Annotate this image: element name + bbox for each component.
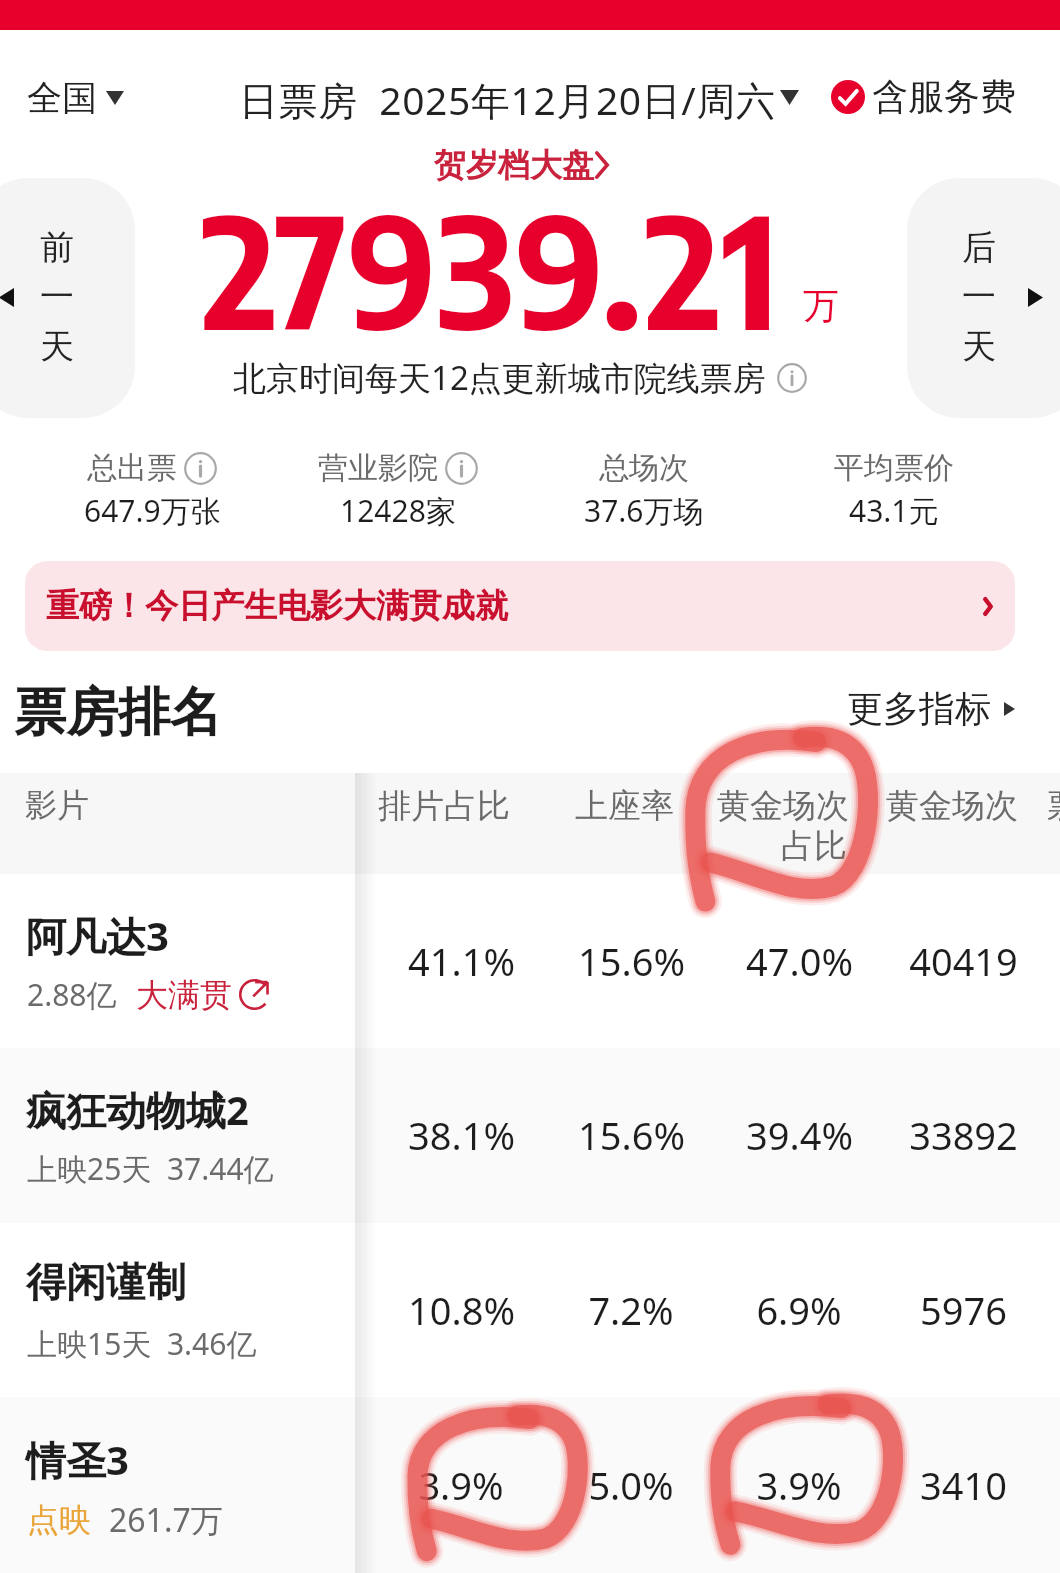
staticText: 阿凡达3	[26, 908, 169, 963]
staticText: 33892	[909, 1109, 1018, 1161]
staticText: 票	[1047, 785, 1060, 827]
staticText: 黄金场次	[717, 785, 849, 827]
staticText: 3.9%	[756, 1459, 842, 1511]
staticText: 15.6%	[578, 935, 685, 987]
staticText: 5976	[920, 1284, 1007, 1336]
staticText: 占比	[781, 825, 847, 867]
staticText: 重磅！今日产生电影大满贯成就	[46, 585, 508, 627]
staticText: 后 一 天	[962, 226, 996, 368]
button[interactable]: 更多指标	[847, 686, 1015, 731]
staticText: 5.0%	[588, 1459, 674, 1511]
button[interactable]: 日票房 2025年12月20日/周六	[235, 66, 810, 128]
staticText: 总出票	[87, 449, 177, 487]
staticText: 全国	[27, 76, 97, 120]
staticText: 票房排名	[14, 680, 222, 746]
staticText: 贺岁档大盘	[434, 145, 594, 185]
button[interactable]: 后一天	[907, 178, 1060, 418]
staticText: 营业影院	[318, 449, 438, 487]
staticText: 38.1%	[408, 1109, 515, 1161]
staticText: 更多指标	[847, 686, 991, 731]
staticText: 41.1%	[408, 935, 515, 987]
staticText: 40419	[909, 935, 1018, 987]
staticText: 37.6万场	[584, 490, 704, 531]
staticText: 北京时间每天12点更新城市院线票房	[233, 355, 766, 400]
staticText: 黄金场次	[886, 785, 1018, 827]
staticText: 6.9%	[756, 1284, 842, 1336]
staticText: 情圣3	[26, 1432, 129, 1487]
button[interactable]: 重磅！今日产生电影大满贯成就	[25, 561, 1015, 651]
staticText: 12428家	[340, 490, 456, 531]
staticText: 27939.21	[201, 173, 781, 363]
button[interactable]: 含服务费	[831, 74, 1016, 119]
staticText: 43.1元	[849, 490, 939, 531]
staticText: 大满贯	[136, 975, 232, 1015]
staticText: 10.8%	[408, 1284, 515, 1336]
button[interactable]: 阿凡达3	[0, 874, 1060, 1048]
staticText: 上映15天 3.46亿	[27, 1323, 257, 1364]
staticText: 3.9%	[418, 1459, 504, 1511]
staticText: 47.0%	[746, 935, 853, 987]
button[interactable]: 贺岁档大盘	[434, 145, 609, 185]
staticText: 39.4%	[746, 1109, 853, 1161]
staticText: 15.6%	[578, 1109, 685, 1161]
staticText: 7.2%	[588, 1284, 674, 1336]
staticText: 261.7万	[109, 1498, 223, 1542]
staticText: 上座率	[575, 785, 674, 827]
staticText: 647.9万张	[84, 490, 221, 531]
button[interactable]: 前一天	[0, 178, 135, 418]
staticText: 3410	[920, 1459, 1007, 1511]
staticText: 日票房 2025年12月20日/周六	[239, 73, 776, 126]
staticText: 万	[803, 283, 839, 328]
staticText: 平均票价	[834, 449, 954, 487]
staticText: 影片	[25, 785, 89, 825]
button[interactable]: 情圣3	[0, 1397, 1060, 1573]
button[interactable]: 疯狂动物城2	[0, 1048, 1060, 1223]
staticText: 点映	[27, 1500, 91, 1540]
staticText: 得闲谨制	[26, 1257, 186, 1307]
staticText: 总场次	[599, 449, 689, 487]
staticText: 含服务费	[872, 74, 1016, 119]
button[interactable]: 得闲谨制	[0, 1223, 1060, 1397]
staticText: 前 一 天	[40, 226, 74, 368]
staticText: 排片占比	[378, 785, 510, 827]
staticText: 上映25天 37.44亿	[27, 1148, 274, 1189]
button[interactable]: 全国	[27, 76, 124, 120]
staticText: 疯狂动物城2	[26, 1082, 249, 1137]
staticText: 2.88亿	[27, 974, 117, 1015]
